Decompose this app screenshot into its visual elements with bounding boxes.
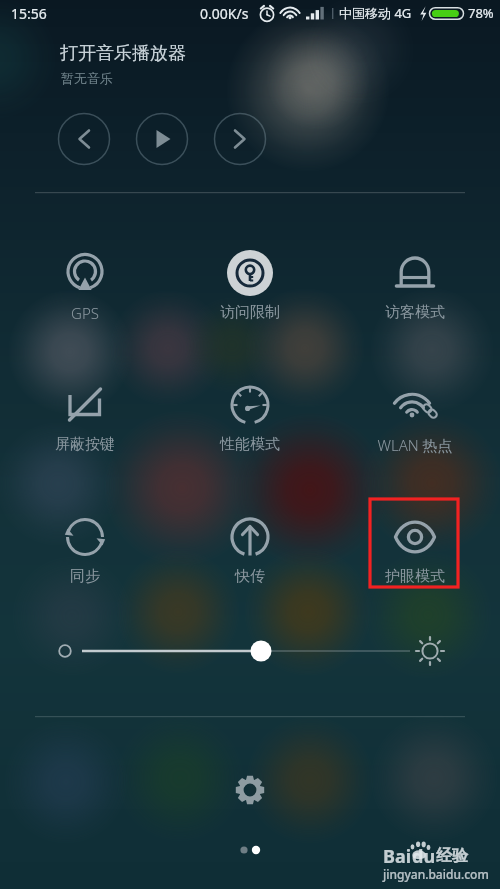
button[interactable]: Next track xyxy=(215,114,265,164)
staticText: WLAN 热点 xyxy=(315,435,500,455)
button[interactable]: 访问限制 xyxy=(206,229,294,317)
button[interactable]: Brightness xyxy=(50,633,450,669)
staticText: 访客模式 xyxy=(315,303,500,322)
staticText: 快传 xyxy=(150,567,350,586)
staticText: GPS xyxy=(0,303,185,323)
staticText: 15:56 xyxy=(11,4,47,23)
button[interactable]: GPS xyxy=(41,229,129,317)
staticText: Bai xyxy=(383,844,412,869)
button[interactable]: Play xyxy=(137,114,187,164)
staticText: 78% xyxy=(468,4,494,22)
staticText: jingyan.baidu.com xyxy=(383,866,489,882)
button[interactable]: 同步 xyxy=(41,493,129,581)
staticText: 经验 xyxy=(436,846,468,866)
staticText: du xyxy=(412,844,436,869)
staticText: 中国移动 4G xyxy=(339,4,412,22)
staticText: 护眼模式 xyxy=(315,567,500,586)
staticText: 性能模式 xyxy=(150,435,350,454)
button[interactable]: Previous track xyxy=(59,114,109,164)
button[interactable]: 屏蔽按键 xyxy=(41,361,129,449)
staticText: 访问限制 xyxy=(150,303,350,322)
staticText: 0.00K/s xyxy=(200,4,249,23)
staticText: 同步 xyxy=(0,567,185,586)
button[interactable]: 快传 xyxy=(206,493,294,581)
button[interactable]: Settings xyxy=(228,768,272,812)
staticText: 暂无音乐 xyxy=(61,70,113,86)
button[interactable]: WLAN 热点 xyxy=(371,361,459,449)
button[interactable]: 性能模式 xyxy=(206,361,294,449)
button[interactable]: 护眼模式 xyxy=(371,493,459,581)
staticText: 打开音乐播放器 xyxy=(60,42,186,65)
staticText: 屏蔽按键 xyxy=(0,435,185,454)
button[interactable]: 访客模式 xyxy=(371,229,459,317)
